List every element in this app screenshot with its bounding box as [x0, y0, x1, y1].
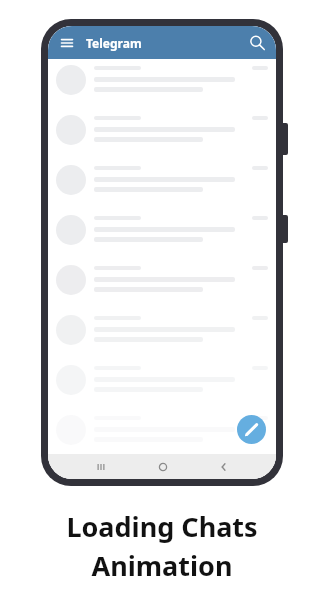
- button[interactable]: Open navigation menu: [56, 32, 78, 54]
- button[interactable]: Home: [132, 454, 193, 479]
- button[interactable]: Search: [246, 32, 268, 54]
- staticText: Telegram: [86, 35, 142, 51]
- staticText: Animation: [91, 547, 233, 584]
- button[interactable]: Back: [193, 454, 254, 479]
- button[interactable]: New message: [237, 415, 266, 444]
- button[interactable]: Recent apps: [70, 454, 132, 479]
- staticText: Loading Chats: [66, 508, 258, 545]
